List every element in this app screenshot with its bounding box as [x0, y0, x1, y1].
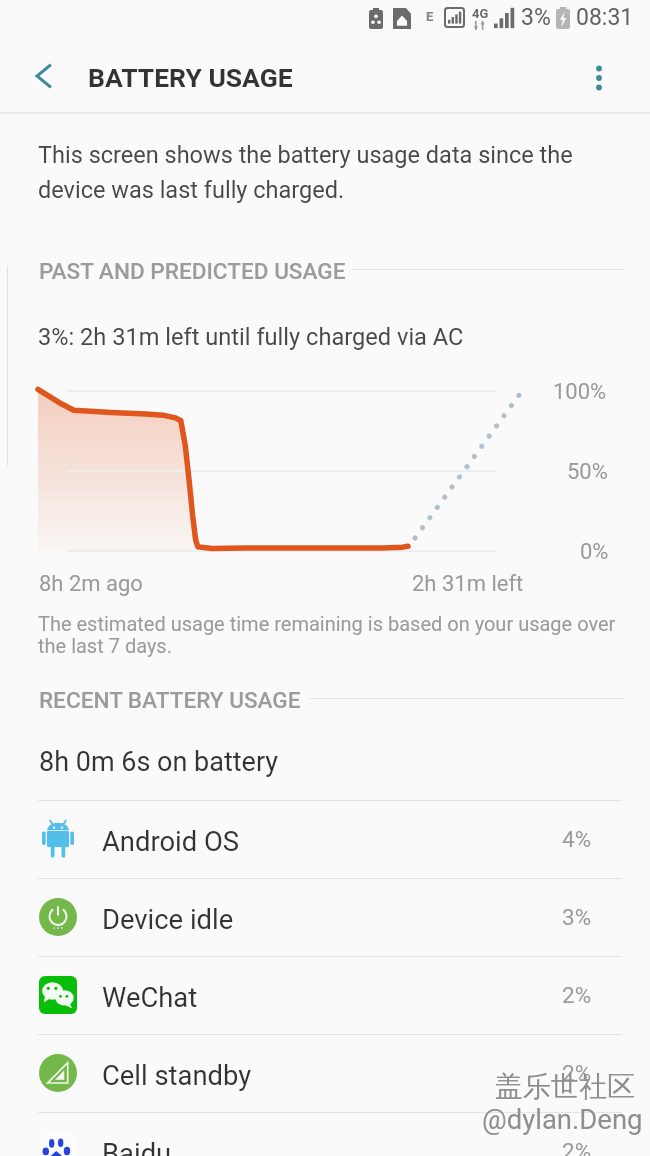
staticText: 2%: [562, 1060, 592, 1086]
staticText: 8h 0m 6s on battery: [39, 746, 279, 778]
staticText: 100%: [553, 379, 607, 405]
button[interactable]: Device idle: [0, 878, 650, 956]
staticText: BATTERY USAGE: [88, 62, 293, 93]
staticText: 50%: [567, 459, 608, 485]
staticText: 8h 2m ago: [39, 571, 143, 597]
staticText: 4%: [562, 826, 592, 852]
button[interactable]: Cell standby: [0, 1034, 650, 1112]
button[interactable]: More options: [575, 54, 623, 102]
staticText: @dylan.Deng: [482, 1103, 643, 1135]
staticText: 4G: [472, 6, 489, 21]
staticText: The estimated usage time remaining is ba…: [38, 612, 618, 658]
staticText: Cell standby: [102, 1060, 252, 1092]
staticText: 3%: [521, 4, 551, 31]
staticText: 3%: [562, 904, 592, 930]
button[interactable]: WeChat: [0, 956, 650, 1034]
button[interactable]: Android OS: [0, 800, 650, 878]
staticText: 2%: [562, 1138, 592, 1156]
staticText: 盖乐世社区: [495, 1069, 635, 1104]
staticText: Device idle: [102, 904, 234, 936]
staticText: Android OS: [102, 826, 240, 858]
button[interactable]: Baidu: [0, 1112, 650, 1156]
staticText: E: [426, 9, 434, 24]
staticText: RECENT BATTERY USAGE: [39, 687, 301, 713]
button[interactable]: Navigate up: [19, 52, 67, 100]
staticText: PAST AND PREDICTED USAGE: [39, 258, 346, 284]
staticText: 08:31: [576, 4, 634, 31]
staticText: This screen shows the battery usage data…: [38, 141, 598, 203]
staticText: 0%: [580, 539, 609, 565]
staticText: 3%: 2h 31m left until fully charged via …: [38, 323, 464, 351]
staticText: WeChat: [102, 982, 198, 1014]
staticText: Baidu: [102, 1138, 172, 1156]
staticText: 2%: [562, 982, 592, 1008]
staticText: 2h 31m left: [412, 571, 524, 597]
